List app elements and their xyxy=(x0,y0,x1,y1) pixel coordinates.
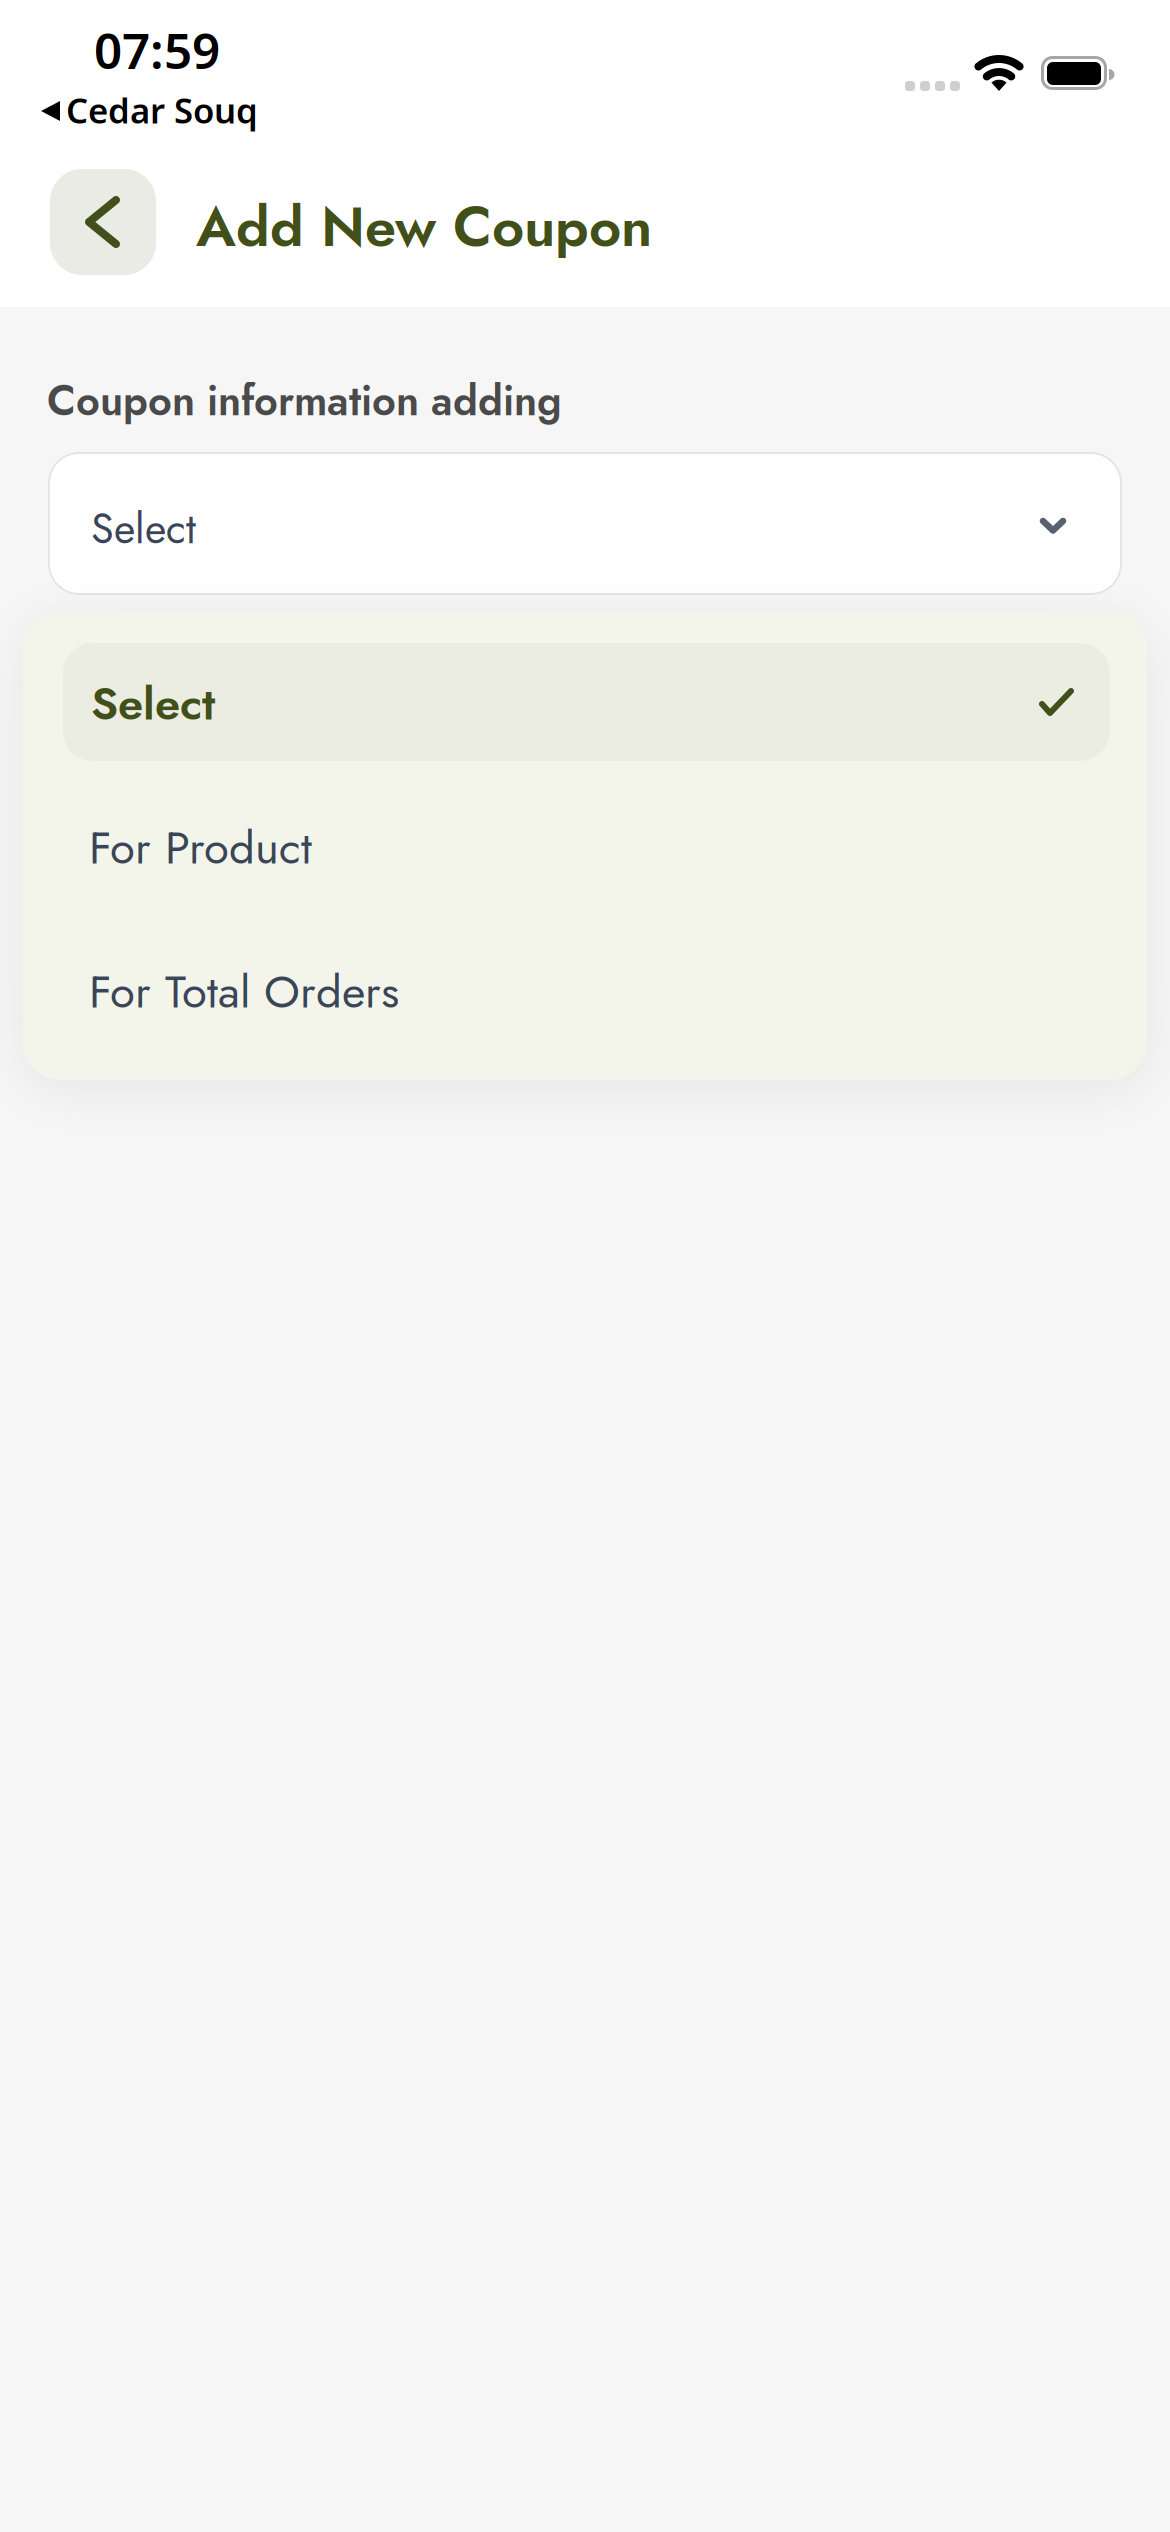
staticText: Select xyxy=(91,499,196,559)
button[interactable]: Select xyxy=(63,643,1110,761)
staticText: For Product xyxy=(89,815,312,880)
button[interactable]: Select xyxy=(48,452,1122,595)
staticText: For Total Orders xyxy=(89,959,399,1024)
staticText: Add New Coupon xyxy=(196,186,652,267)
staticText: Cedar Souq xyxy=(66,87,258,133)
staticText: 07:59 xyxy=(94,17,220,82)
button[interactable]: Back xyxy=(50,169,156,275)
button[interactable]: For Product xyxy=(33,770,1137,902)
staticText: Coupon information adding xyxy=(47,371,562,431)
button[interactable]: For Total Orders xyxy=(33,914,1137,1046)
staticText: Select xyxy=(91,671,215,736)
